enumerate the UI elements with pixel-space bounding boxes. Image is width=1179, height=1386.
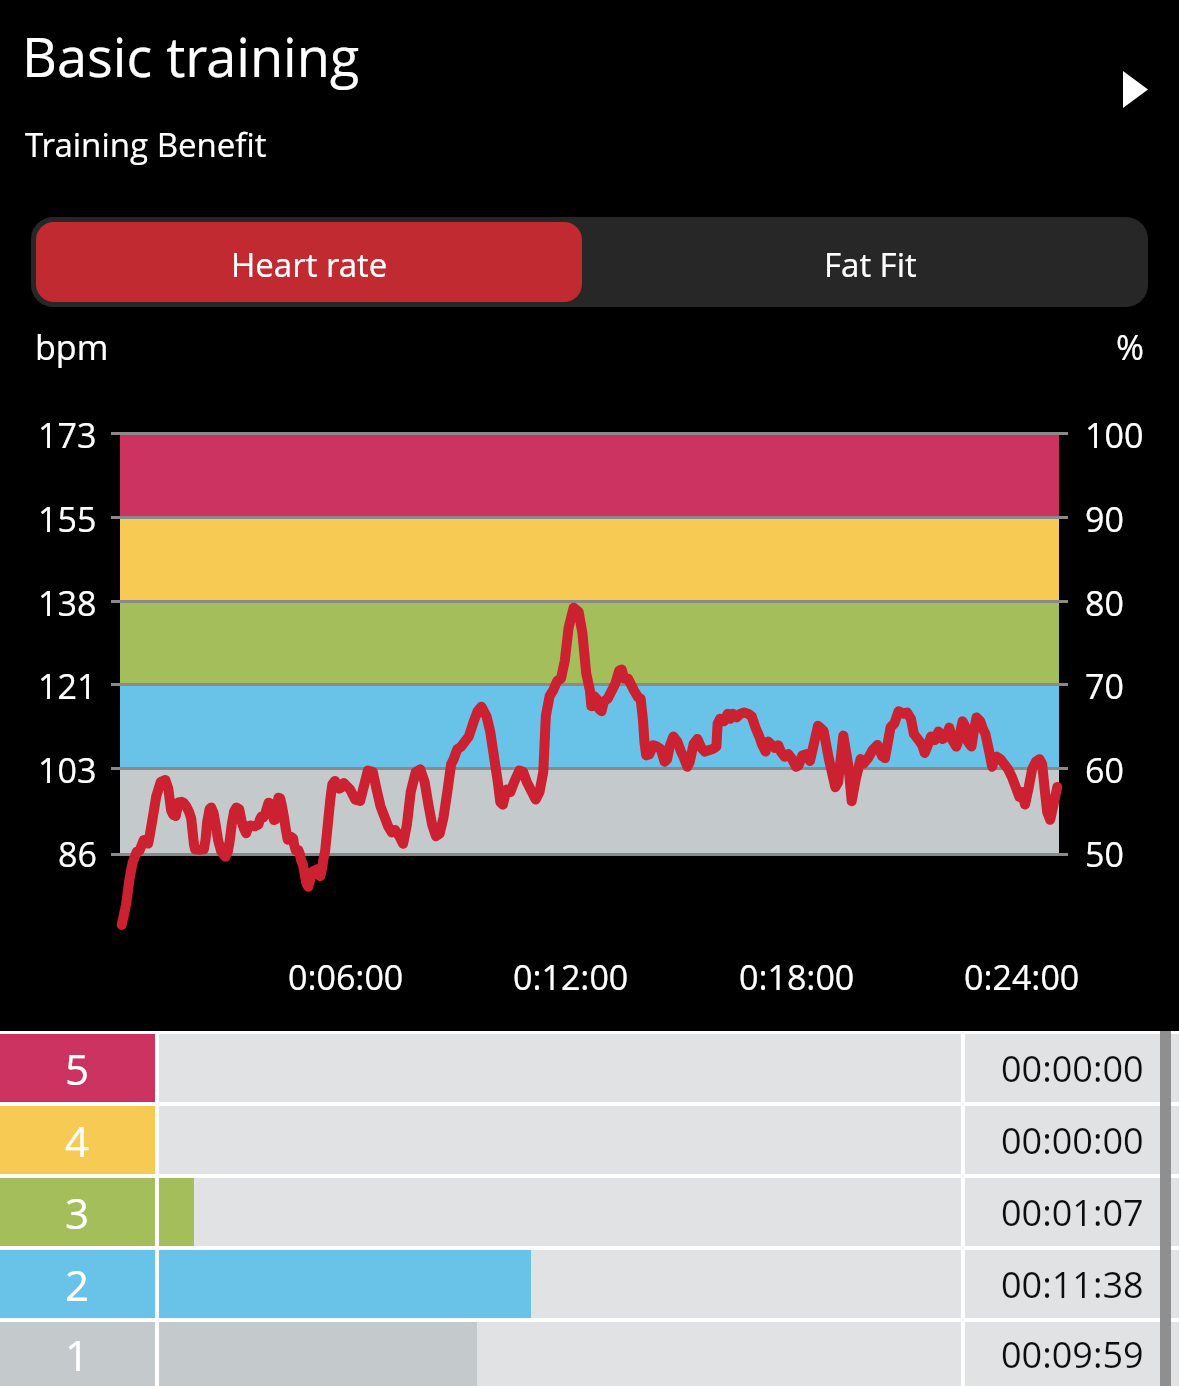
- staticText: 86: [58, 831, 97, 877]
- staticText: 155: [38, 496, 97, 542]
- staticText: Training Benefit: [25, 122, 267, 167]
- staticText: 0:06:00: [288, 954, 404, 1000]
- staticText: 00:00:00: [1001, 1044, 1144, 1093]
- staticText: 60: [1085, 747, 1124, 793]
- staticText: 0:24:00: [964, 954, 1080, 1000]
- button[interactable]: Fat Fit: [587, 217, 1148, 307]
- button[interactable]: 1: [0, 1322, 1179, 1386]
- staticText: Basic training: [22, 19, 360, 93]
- staticText: 103: [38, 747, 97, 793]
- button[interactable]: 4: [0, 1106, 1179, 1174]
- staticText: 50: [1085, 831, 1124, 877]
- staticText: 00:01:07: [1001, 1188, 1144, 1237]
- staticText: 00:09:59: [1001, 1330, 1144, 1379]
- staticText: 0:12:00: [513, 954, 629, 1000]
- button[interactable]: 3: [0, 1178, 1179, 1246]
- staticText: 5: [65, 1040, 90, 1097]
- staticText: 0:18:00: [739, 954, 855, 1000]
- staticText: 80: [1085, 580, 1124, 626]
- staticText: 1: [65, 1326, 90, 1383]
- button[interactable]: 2: [0, 1250, 1179, 1318]
- staticText: 00:11:38: [1001, 1260, 1144, 1309]
- staticText: 70: [1085, 663, 1124, 709]
- button[interactable]: 5: [0, 1034, 1179, 1102]
- staticText: 2: [65, 1256, 90, 1313]
- staticText: 138: [38, 580, 97, 626]
- staticText: Heart rate: [231, 242, 388, 287]
- staticText: %: [1116, 324, 1144, 370]
- staticText: 90: [1085, 496, 1124, 542]
- staticText: 173: [38, 412, 97, 458]
- staticText: bpm: [35, 324, 109, 370]
- button[interactable]: Play: [1100, 54, 1170, 124]
- staticText: 4: [65, 1112, 90, 1169]
- staticText: 100: [1085, 412, 1144, 458]
- staticText: 00:00:00: [1001, 1116, 1144, 1165]
- staticText: 121: [38, 663, 97, 709]
- staticText: 3: [65, 1184, 90, 1241]
- button[interactable]: Heart rate: [36, 222, 582, 302]
- staticText: Fat Fit: [824, 242, 917, 287]
